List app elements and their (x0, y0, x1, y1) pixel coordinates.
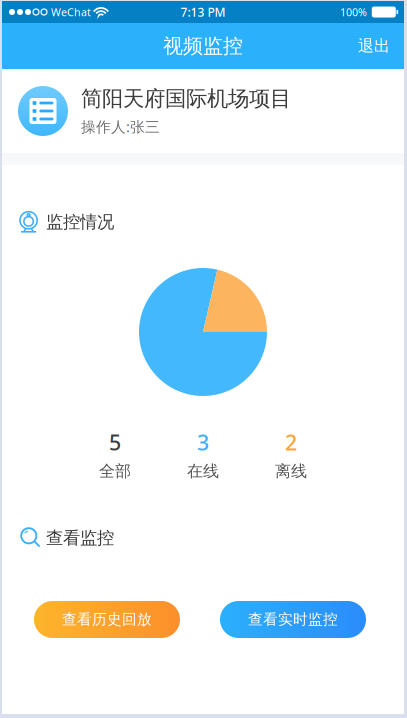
staticText: 视频监控 (163, 34, 243, 58)
staticText: 在线 (187, 461, 219, 481)
button[interactable]: 退出 (344, 23, 404, 69)
staticText: 全部 (99, 461, 131, 481)
staticText: WeChat (51, 5, 91, 19)
button[interactable]: 查看实时监控 (220, 601, 366, 638)
staticText: 3 (197, 428, 209, 456)
staticText: 5 (109, 428, 121, 456)
staticText: 7:13 PM (180, 4, 225, 20)
staticText: 100% (340, 5, 367, 19)
staticText: 查看实时监控 (248, 610, 338, 628)
staticText: 离线 (275, 461, 307, 481)
staticText: 退出 (358, 36, 390, 56)
staticText: 操作人:张三 (81, 117, 160, 136)
staticText: 简阳天府国际机场项目 (81, 86, 291, 112)
staticText: 查看监控 (46, 527, 114, 549)
button[interactable]: 查看历史回放 (34, 601, 180, 638)
staticText: 监控情况 (46, 211, 114, 233)
staticText: 查看历史回放 (62, 610, 152, 628)
staticText: 2 (285, 428, 297, 456)
